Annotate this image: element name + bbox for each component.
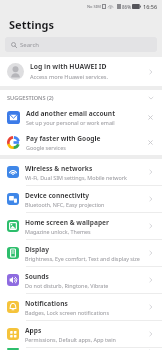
other: Open: [147, 195, 155, 203]
button[interactable]: Home screen & wallpaper: [0, 213, 162, 239]
staticText: Pay faster with Google: [26, 134, 101, 143]
staticText: Device connectivity: [25, 191, 90, 200]
staticText: 86%: [122, 4, 131, 10]
staticText: Log in with HUAWEI ID: [30, 62, 107, 71]
staticText: Google services: [26, 144, 66, 151]
other: Open: [147, 168, 155, 176]
staticText: Bluetooth, NFC, Easy projection: [25, 201, 105, 208]
staticText: Magazine unlock, Themes: [25, 228, 91, 235]
staticText: 16:56: [143, 3, 158, 10]
other: Open: [147, 222, 155, 230]
staticText: Display: [25, 245, 49, 254]
button[interactable]: Dismiss suggestion: [146, 113, 155, 122]
staticText: Notifications: [25, 299, 68, 308]
button[interactable]: Pay faster with Google: [0, 130, 162, 155]
staticText: SUGGESTIONS (2): [7, 94, 147, 102]
staticText: Brightness, Eye comfort, Text and displa…: [25, 255, 140, 262]
button[interactable]: Device connectivity: [0, 186, 162, 212]
staticText: Sounds: [25, 272, 49, 281]
staticText: No SIM: [87, 4, 101, 9]
button[interactable]: Sounds: [0, 267, 162, 293]
button[interactable]: Add another email account: [0, 105, 162, 130]
button[interactable]: Battery: [0, 348, 162, 350]
staticText: Home screen & wallpaper: [25, 218, 109, 227]
button[interactable]: Dismiss suggestion: [146, 138, 155, 147]
staticText: Apps: [25, 326, 42, 335]
other: Open: [147, 303, 155, 311]
button[interactable]: Notifications: [0, 294, 162, 320]
other: Collapse suggestions: [147, 94, 155, 102]
other: Open: [147, 249, 155, 257]
staticText: Access more Huawei services.: [30, 73, 108, 81]
other: Open: [147, 68, 155, 76]
staticText: Permissions, Default apps, App twin: [25, 336, 116, 343]
staticText: Badges, Lock screen notifications: [25, 309, 109, 316]
other: Open: [147, 330, 155, 338]
button[interactable]: Search: [5, 37, 157, 52]
button[interactable]: SUGGESTIONS (2): [0, 90, 162, 105]
button[interactable]: Log in with HUAWEI ID: [0, 57, 162, 86]
button[interactable]: Wireless & networks: [0, 159, 162, 185]
staticText: Add another email account: [26, 109, 115, 118]
staticText: Settings: [9, 17, 55, 32]
staticText: Search: [20, 41, 39, 49]
staticText: Wi-Fi, Dual SIM settings, Mobile network: [25, 174, 127, 181]
other: Open: [147, 348, 155, 350]
button[interactable]: Display: [0, 240, 162, 266]
staticText: Do not disturb, Ringtone, Vibrate: [25, 282, 109, 289]
other: Open: [147, 276, 155, 284]
button[interactable]: Apps: [0, 321, 162, 347]
staticText: Wireless & networks: [25, 164, 93, 173]
staticText: Set up your personal or work email: [26, 119, 115, 126]
